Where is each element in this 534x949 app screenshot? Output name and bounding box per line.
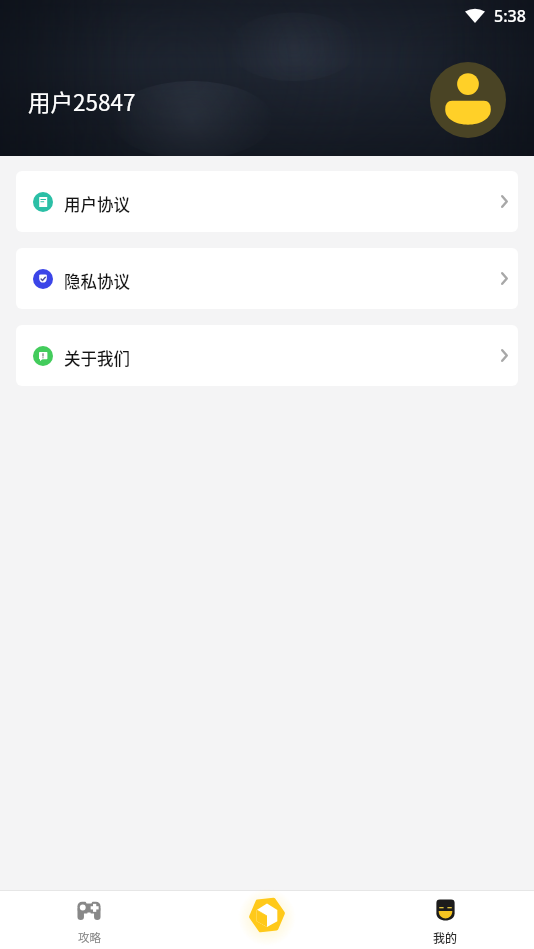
button[interactable]: 用户协议 [16,171,518,232]
staticText: 我的 [433,929,458,946]
staticText: 用户协议 [64,192,130,216]
button[interactable]: 攻略 [0,890,178,949]
staticText: 攻略 [78,929,101,946]
staticText: 隐私协议 [64,269,130,293]
staticText: 关于我们 [64,346,130,370]
button[interactable]: 关于我们 [16,325,518,386]
button[interactable]: Home [178,890,356,949]
staticText: 用户25847 [28,85,136,118]
button[interactable]: Avatar [430,62,506,138]
button[interactable]: 我的 [356,890,534,949]
staticText: 5:38 [494,5,526,26]
button[interactable]: 隐私协议 [16,248,518,309]
